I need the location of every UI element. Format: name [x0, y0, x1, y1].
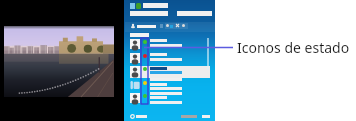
staticText: Iconos de estado: [237, 38, 350, 57]
